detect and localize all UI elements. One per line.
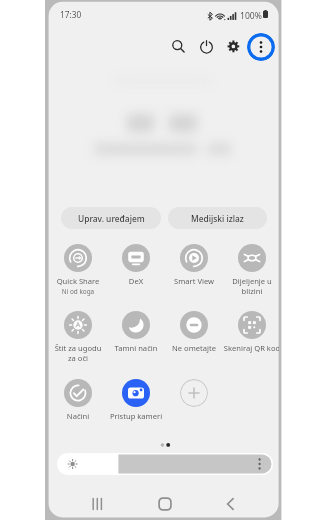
button[interactable]: Medijski izlaz [168, 207, 267, 229]
staticText: Medijski izlaz [191, 213, 244, 224]
button[interactable]: More options [247, 33, 275, 61]
button[interactable] [165, 378, 223, 435]
button[interactable] [165, 243, 223, 300]
button[interactable] [165, 310, 223, 367]
button[interactable]: Power off [193, 33, 220, 60]
button[interactable] [57, 453, 273, 475]
staticText: Ni od koga [49, 287, 112, 297]
button[interactable] [107, 310, 165, 367]
button[interactable] [107, 243, 165, 300]
staticText: Ne ometajte [160, 343, 228, 363]
button[interactable] [223, 243, 279, 300]
staticText: Načini [49, 411, 112, 431]
button[interactable] [107, 378, 165, 435]
button[interactable]: Recent apps [84, 490, 112, 518]
button[interactable] [49, 243, 107, 300]
staticText: 17:30 [60, 9, 82, 20]
button[interactable] [223, 310, 279, 367]
button[interactable]: Search [165, 33, 192, 60]
button[interactable] [49, 378, 107, 435]
button[interactable] [49, 310, 107, 367]
button[interactable]: Home [151, 490, 179, 518]
button[interactable]: Uprav. uređajem [61, 207, 161, 229]
staticText: Quick Share [49, 276, 112, 296]
button[interactable]: Settings [220, 33, 247, 60]
staticText: Pristup kameri [102, 411, 170, 431]
staticText: 100% [240, 10, 262, 22]
staticText: Tamni način [102, 343, 170, 363]
staticText: Štit za ugodu za oči [49, 343, 112, 363]
staticText: DeX [102, 276, 170, 296]
staticText: Skeniraj QR kod [218, 343, 279, 363]
button[interactable]: Back [217, 490, 245, 518]
staticText: Smart View [160, 276, 228, 296]
staticText: Uprav. uređajem [78, 213, 145, 224]
staticText: Dijeljenje u blizini [218, 276, 279, 296]
